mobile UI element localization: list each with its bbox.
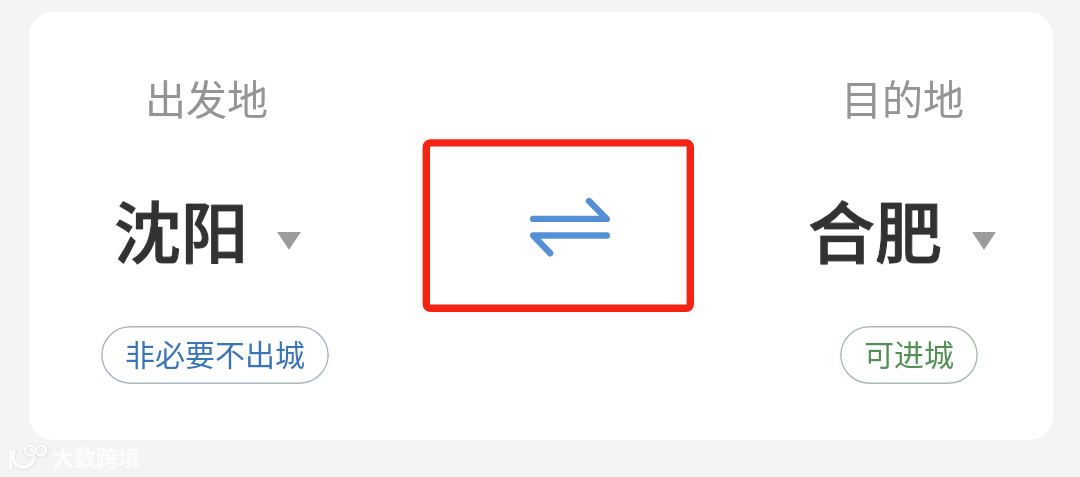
button[interactable]: Swap departure and destination <box>426 143 690 308</box>
button[interactable]: 目的地 <box>804 60 1004 260</box>
staticText: 出发地 <box>145 67 268 126</box>
staticText: 合肥 <box>808 180 942 277</box>
staticText: 目的地 <box>841 67 964 126</box>
staticText: 大数跨境 <box>52 440 141 472</box>
button[interactable]: 出发地 <box>110 60 310 260</box>
staticText: 可进城 <box>864 331 954 374</box>
staticText: 沈阳 <box>114 180 248 277</box>
button[interactable]: 可进城 <box>840 326 978 384</box>
button[interactable]: 非必要不出城 <box>101 326 329 384</box>
staticText: 合肥 <box>808 180 942 277</box>
staticText: 大数跨境 <box>52 440 141 472</box>
staticText: 沈阳 <box>114 180 248 277</box>
staticText: 非必要不出城 <box>125 331 305 374</box>
